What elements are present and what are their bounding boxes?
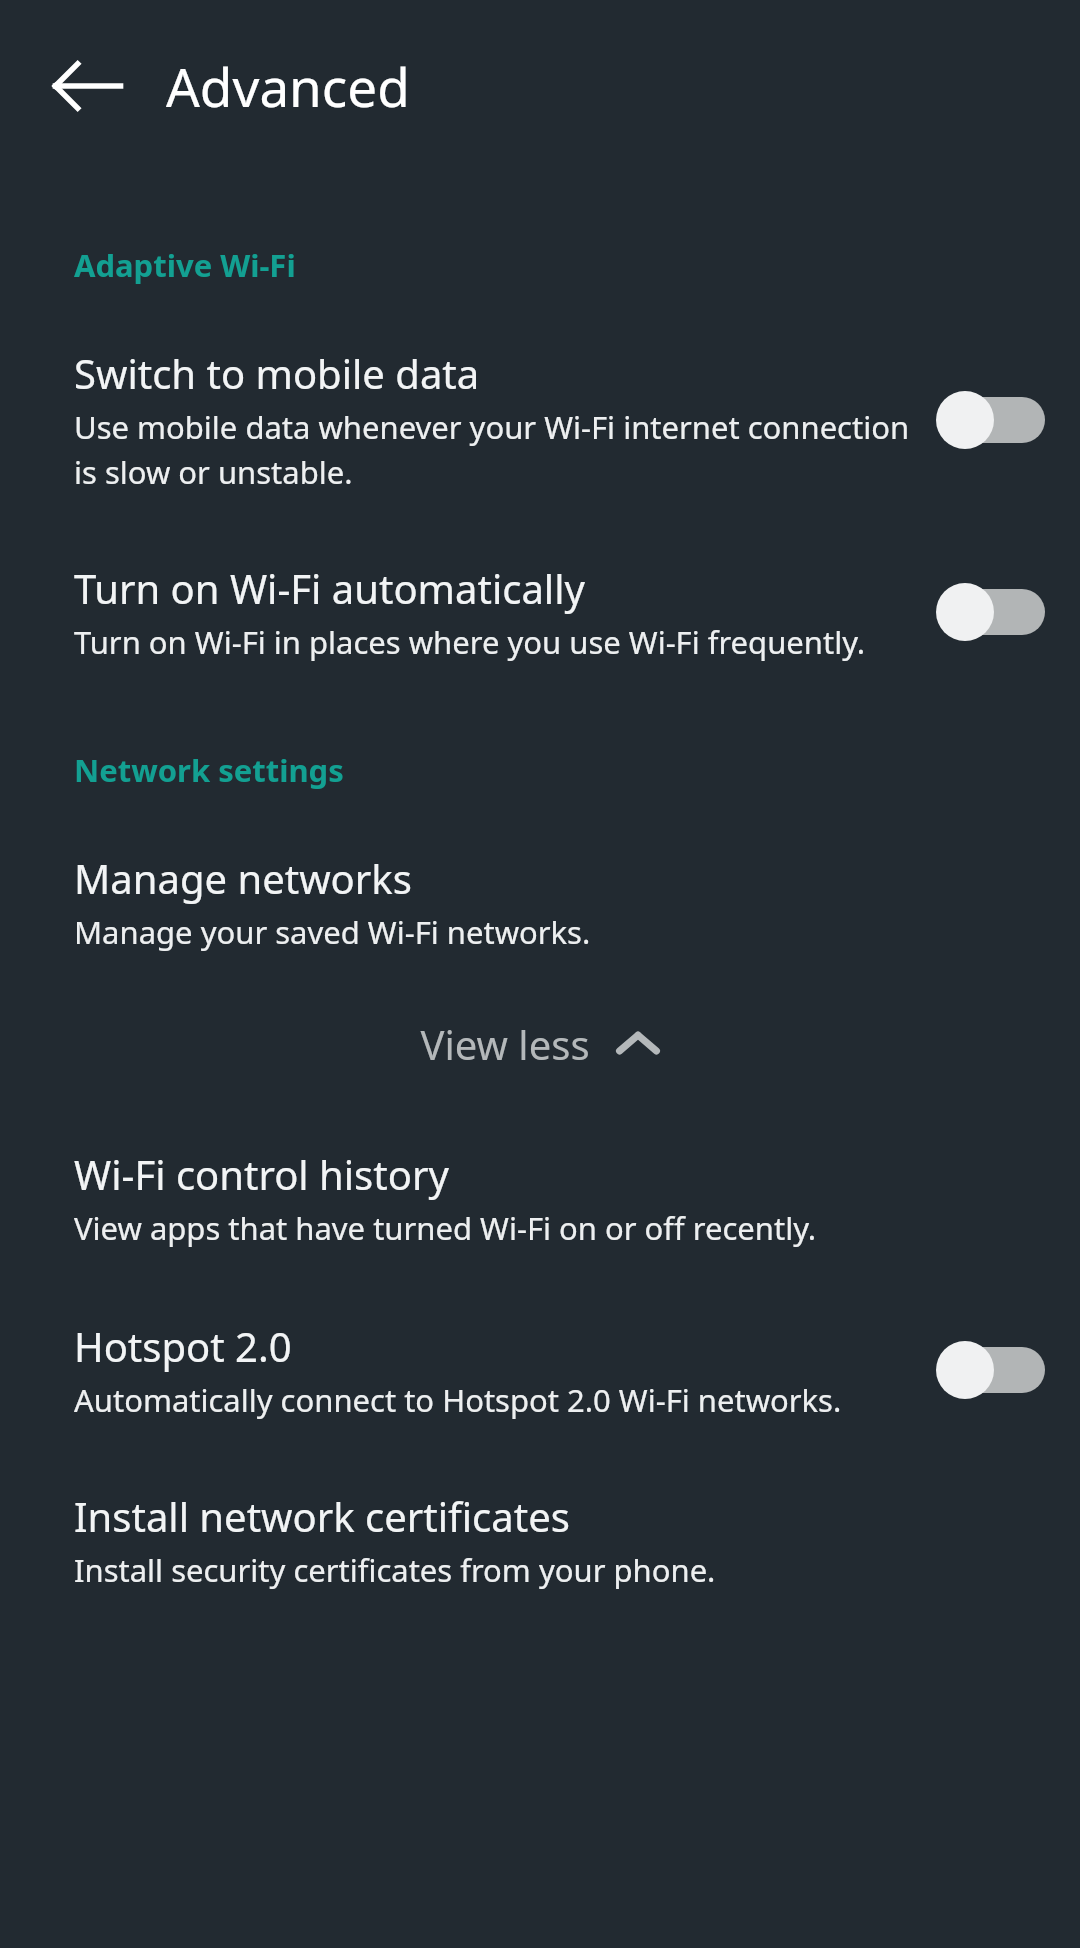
button[interactable]: Switch to mobile data — [0, 346, 1080, 493]
button[interactable]: Manage networks — [0, 851, 1080, 953]
staticText: Install network certificates — [74, 1489, 570, 1543]
staticText: Network settings — [74, 749, 344, 791]
button[interactable]: Back — [40, 38, 136, 134]
staticText: Hotspot 2.0 — [74, 1319, 292, 1373]
staticText: Adaptive Wi-Fi — [74, 244, 296, 286]
staticText: Advanced — [166, 50, 410, 122]
button[interactable]: Toggle setting — [936, 575, 1056, 649]
button[interactable]: Install network certificates — [0, 1489, 1080, 1591]
staticText: Switch to mobile data — [74, 346, 480, 400]
staticText: Turn on Wi-Fi automatically — [74, 561, 585, 615]
staticText: Manage networks — [74, 851, 412, 905]
staticText: Wi-Fi control history — [74, 1147, 449, 1201]
staticText: Use mobile data whenever your Wi-Fi inte… — [74, 406, 926, 493]
button[interactable]: Toggle setting — [936, 1333, 1056, 1407]
button[interactable]: Toggle setting — [936, 383, 1056, 457]
button[interactable]: Wi-Fi control history — [0, 1147, 1080, 1249]
staticText: View less — [420, 1017, 590, 1071]
staticText: Install security certificates from your … — [74, 1549, 716, 1591]
staticText: View apps that have turned Wi-Fi on or o… — [74, 1207, 817, 1249]
staticText: Turn on Wi-Fi in places where you use Wi… — [74, 621, 866, 663]
staticText: Automatically connect to Hotspot 2.0 Wi-… — [74, 1379, 842, 1421]
button[interactable]: Turn on Wi-Fi automatically — [0, 561, 1080, 663]
staticText: Manage your saved Wi-Fi networks. — [74, 911, 591, 953]
button[interactable]: Hotspot 2.0 — [0, 1319, 1080, 1421]
button[interactable]: View less — [0, 1003, 1080, 1085]
